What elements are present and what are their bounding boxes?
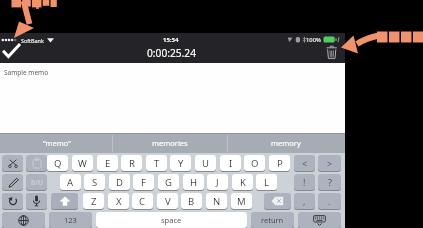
button[interactable]: F xyxy=(133,174,154,190)
staticText: W xyxy=(78,157,87,170)
button[interactable] xyxy=(298,212,341,228)
staticText: memories xyxy=(152,138,188,148)
button[interactable]: B/U xyxy=(26,174,47,190)
staticText: SoftBank xyxy=(21,37,44,44)
button[interactable]: ? xyxy=(318,174,341,190)
staticText: N xyxy=(213,195,221,208)
staticText: O xyxy=(251,157,259,170)
staticText: I xyxy=(229,157,233,170)
staticText: 0:00:25.24 xyxy=(147,46,196,60)
staticText: memory xyxy=(271,138,301,148)
button[interactable] xyxy=(2,155,23,171)
button[interactable]: < xyxy=(294,155,315,171)
button[interactable] xyxy=(264,193,291,209)
button[interactable]: space xyxy=(96,212,247,228)
button[interactable] xyxy=(0,42,30,62)
button[interactable] xyxy=(26,155,47,171)
staticText: ! xyxy=(303,176,306,188)
button[interactable]: B xyxy=(181,193,202,209)
staticText: T xyxy=(154,157,160,170)
button[interactable]: . xyxy=(318,193,341,209)
staticText: “memo” xyxy=(43,138,71,148)
staticText: F xyxy=(141,176,146,189)
staticText: S xyxy=(92,176,98,189)
button[interactable]: L xyxy=(256,174,277,190)
button[interactable] xyxy=(0,63,345,133)
staticText: K xyxy=(240,176,246,189)
button[interactable]: R xyxy=(121,155,142,171)
staticText: Y xyxy=(178,157,184,170)
staticText: Z xyxy=(91,195,97,208)
button[interactable]: Z xyxy=(83,193,104,209)
button[interactable]: I xyxy=(220,155,241,171)
staticText: space xyxy=(161,215,182,225)
button[interactable]: V xyxy=(157,193,178,209)
button[interactable]: A xyxy=(60,174,81,190)
button[interactable]: X xyxy=(108,193,129,209)
button[interactable]: , xyxy=(294,193,315,209)
staticText: A xyxy=(67,176,74,189)
staticText: M xyxy=(237,195,246,208)
button[interactable]: S xyxy=(84,174,105,190)
button[interactable]: U xyxy=(195,155,216,171)
staticText: H xyxy=(190,176,198,189)
staticText: B xyxy=(188,195,195,208)
staticText: ? xyxy=(328,176,332,188)
staticText: > xyxy=(327,157,333,169)
button[interactable]: C xyxy=(132,193,153,209)
staticText: < xyxy=(302,157,308,169)
button[interactable]: M xyxy=(231,193,252,209)
button[interactable]: P xyxy=(269,155,290,171)
button[interactable]: ! xyxy=(294,174,315,190)
staticText: E xyxy=(105,157,111,170)
button[interactable]: H xyxy=(183,174,204,190)
staticText: J xyxy=(216,176,219,189)
button[interactable]: G xyxy=(158,174,179,190)
button[interactable] xyxy=(325,45,341,61)
button[interactable]: Q xyxy=(47,155,68,171)
staticText: 100% xyxy=(306,36,321,44)
button[interactable]: Y xyxy=(170,155,191,171)
staticText: B/U xyxy=(31,178,43,187)
staticText: U xyxy=(202,157,209,170)
button[interactable] xyxy=(2,212,45,228)
staticText: L xyxy=(264,176,269,189)
button[interactable] xyxy=(51,193,78,209)
button[interactable]: T xyxy=(146,155,167,171)
button[interactable] xyxy=(2,174,23,190)
staticText: C xyxy=(139,195,146,208)
button[interactable]: return xyxy=(251,212,294,228)
staticText: Sample memo xyxy=(4,68,49,77)
staticText: return xyxy=(261,215,284,225)
staticText: 123 xyxy=(64,215,77,225)
button[interactable]: D xyxy=(109,174,130,190)
staticText: D xyxy=(116,176,123,189)
staticText: . xyxy=(328,195,331,207)
button[interactable] xyxy=(26,193,47,209)
button[interactable]: J xyxy=(207,174,228,190)
staticText: P xyxy=(277,157,283,170)
button[interactable] xyxy=(2,193,23,209)
staticText: Q xyxy=(54,157,62,170)
staticText: , xyxy=(303,195,306,207)
button[interactable]: N xyxy=(206,193,227,209)
staticText: V xyxy=(165,195,171,208)
button[interactable]: K xyxy=(232,174,253,190)
button[interactable]: > xyxy=(318,155,341,171)
staticText: G xyxy=(165,176,172,189)
staticText: X xyxy=(116,195,122,208)
button[interactable]: W xyxy=(72,155,93,171)
staticText: 15:54 xyxy=(163,36,179,44)
button[interactable]: O xyxy=(244,155,265,171)
button[interactable]: E xyxy=(97,155,118,171)
button[interactable]: 123 xyxy=(49,212,92,228)
staticText: R xyxy=(129,157,135,170)
